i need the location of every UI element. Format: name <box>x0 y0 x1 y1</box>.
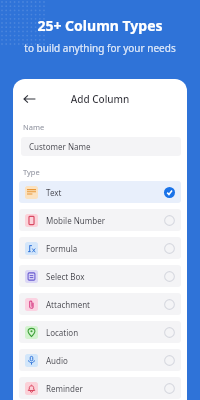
button[interactable]: Formula <box>19 237 181 259</box>
staticText: Type <box>23 167 40 177</box>
button[interactable]: Reminder <box>19 377 181 399</box>
staticText: Text <box>46 187 164 198</box>
staticText: to build anything for your needs <box>0 41 200 55</box>
button[interactable]: Back <box>20 89 40 109</box>
button[interactable]: Audio <box>19 349 181 371</box>
staticText: Select Box <box>46 271 164 282</box>
button[interactable]: Attachment <box>19 293 181 315</box>
button[interactable]: Mobile Number <box>19 209 181 231</box>
button[interactable]: Customer Name <box>21 137 181 156</box>
button[interactable]: Select Box <box>19 265 181 287</box>
button[interactable]: Location <box>19 321 181 343</box>
staticText: Attachment <box>46 299 164 310</box>
staticText: Audio <box>46 355 164 366</box>
staticText: Mobile Number <box>46 215 164 226</box>
button[interactable]: Text <box>19 181 181 203</box>
staticText: Location <box>46 327 164 338</box>
staticText: Reminder <box>46 383 164 394</box>
staticText: 25+ Column Types <box>0 16 200 35</box>
staticText: Add Column <box>13 92 187 106</box>
staticText: Customer Name <box>29 141 91 152</box>
staticText: Formula <box>46 243 164 254</box>
staticText: Name <box>23 122 45 132</box>
